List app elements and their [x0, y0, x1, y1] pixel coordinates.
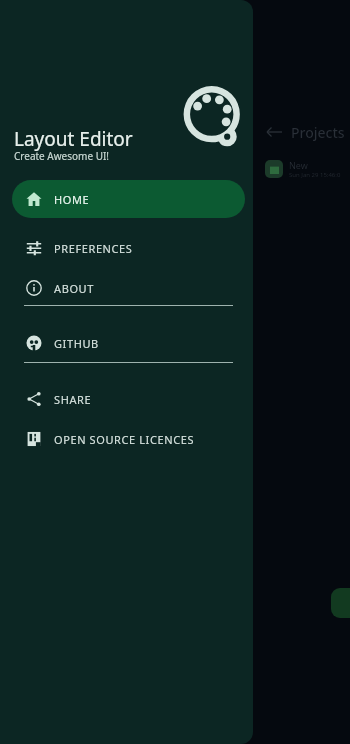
button[interactable]: HOME	[12, 180, 245, 218]
button[interactable]: Add project	[331, 588, 350, 618]
staticText: Projects	[291, 123, 345, 142]
button[interactable]: New	[258, 152, 350, 186]
staticText: ABOUT	[54, 281, 94, 296]
staticText: HOME	[54, 192, 90, 207]
staticText: Create Awesome UI!	[14, 149, 110, 163]
staticText: SHARE	[54, 392, 92, 407]
button[interactable]: OPEN SOURCE LICENCES	[12, 423, 245, 455]
staticText: PREFERENCES	[54, 241, 133, 256]
staticText: Layout Editor	[14, 126, 133, 152]
staticText: OPEN SOURCE LICENCES	[54, 432, 195, 447]
button[interactable]: Back	[266, 124, 282, 140]
button[interactable]: ABOUT	[12, 272, 245, 304]
staticText: GITHUB	[54, 336, 99, 351]
staticText: Sun Jan 29 15:46:0	[289, 171, 341, 179]
button[interactable]: PREFERENCES	[12, 232, 245, 264]
button[interactable]: GITHUB	[12, 327, 245, 359]
button[interactable]: SHARE	[12, 383, 245, 415]
staticText: New	[289, 159, 308, 171]
